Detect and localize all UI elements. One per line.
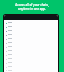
button[interactable] xyxy=(4,29,58,33)
staticText: Access all of your chats, anytime in one… xyxy=(15,3,49,11)
button[interactable] xyxy=(4,41,58,45)
button[interactable] xyxy=(4,69,58,72)
button[interactable] xyxy=(4,21,58,25)
button[interactable] xyxy=(4,49,58,53)
button[interactable] xyxy=(4,25,58,29)
button[interactable] xyxy=(4,53,58,57)
button[interactable] xyxy=(4,37,58,41)
button[interactable] xyxy=(4,61,58,65)
button[interactable] xyxy=(4,57,58,61)
button[interactable] xyxy=(4,45,58,49)
button[interactable] xyxy=(4,65,58,69)
button[interactable] xyxy=(4,33,58,37)
